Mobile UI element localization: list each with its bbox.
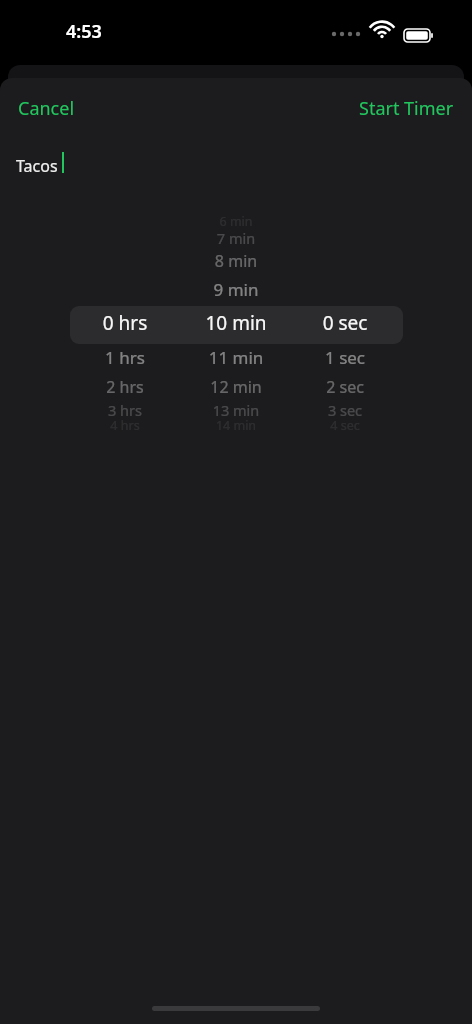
- staticText: 9 min: [176, 278, 296, 301]
- button[interactable]: Cancel: [6, 88, 87, 129]
- staticText: 10 min: [176, 310, 296, 336]
- staticText: 0 sec: [285, 310, 405, 336]
- staticText: 6 min: [176, 213, 296, 230]
- button[interactable]: 1 hrs: [0, 220, 472, 510]
- button[interactable]: 9 min: [0, 220, 472, 510]
- staticText: 13 min: [176, 400, 296, 420]
- button[interactable]: 1 sec: [0, 220, 472, 510]
- button[interactable]: Start Timer: [347, 88, 466, 129]
- staticText: 14 min: [176, 417, 296, 434]
- staticText: 7 min: [176, 228, 296, 248]
- staticText: 1 sec: [285, 346, 405, 369]
- staticText: 4:53: [66, 19, 102, 44]
- staticText: 3 hrs: [65, 400, 185, 420]
- staticText: 11 min: [176, 346, 296, 369]
- staticText: 4 hrs: [65, 417, 185, 434]
- staticText: 8 min: [176, 250, 296, 272]
- staticText: 3 sec: [285, 400, 405, 420]
- staticText: 1 hrs: [65, 346, 185, 369]
- staticText: 2 sec: [285, 376, 405, 398]
- staticText: 0 hrs: [65, 310, 185, 336]
- staticText: 12 min: [176, 376, 296, 398]
- staticText: Cancel: [18, 96, 75, 121]
- staticText: 4 sec: [285, 417, 405, 434]
- staticText: 2 hrs: [65, 376, 185, 398]
- staticText: Tacos: [16, 155, 58, 177]
- staticText: Start Timer: [359, 96, 454, 121]
